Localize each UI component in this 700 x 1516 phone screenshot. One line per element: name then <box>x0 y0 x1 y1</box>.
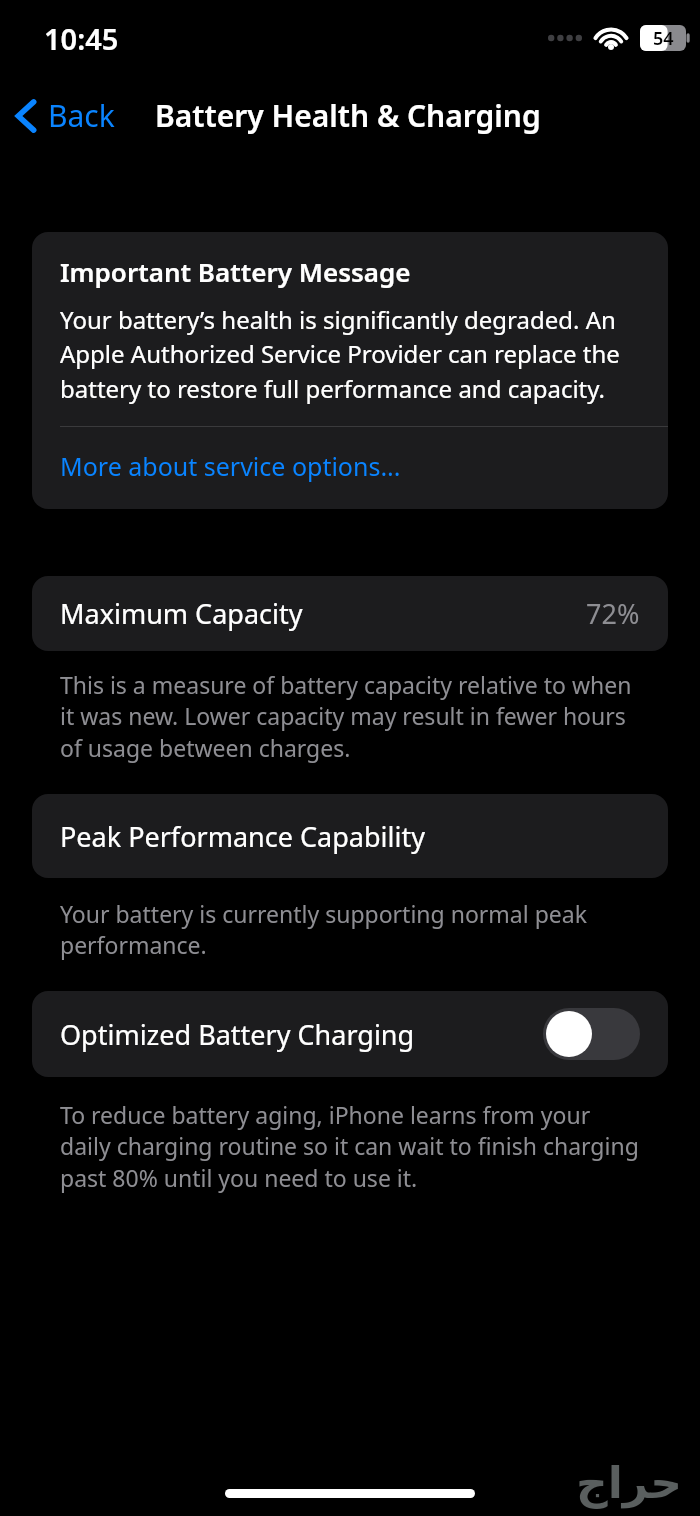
staticText: Peak Performance Capability <box>60 818 425 855</box>
staticText: 72% <box>586 595 640 632</box>
button[interactable]: More about service options... <box>32 427 668 509</box>
button[interactable]: Maximum Capacity <box>32 576 668 651</box>
staticText: Your battery is currently supporting nor… <box>60 898 640 961</box>
staticText: Maximum Capacity <box>60 595 303 632</box>
staticText: حراج <box>576 1457 682 1508</box>
staticText: This is a measure of battery capacity re… <box>60 669 640 764</box>
staticText: Important Battery Message <box>60 254 411 289</box>
staticText: 54 <box>653 26 674 51</box>
staticText: Your battery’s health is significantly d… <box>60 303 642 406</box>
staticText: More about service options... <box>60 449 401 483</box>
staticText: Optimized Battery Charging <box>60 1016 543 1053</box>
staticText: Back <box>48 95 115 136</box>
button[interactable]: Back <box>0 89 125 142</box>
button[interactable]: Optimized Battery Charging toggle <box>543 1008 640 1060</box>
button[interactable]: Peak Performance Capability <box>32 794 668 878</box>
staticText: Battery Health & Charging <box>155 95 541 136</box>
staticText: 10:45 <box>44 19 119 58</box>
button[interactable]: Optimized Battery Charging <box>32 991 668 1077</box>
staticText: To reduce battery aging, iPhone learns f… <box>60 1099 640 1194</box>
